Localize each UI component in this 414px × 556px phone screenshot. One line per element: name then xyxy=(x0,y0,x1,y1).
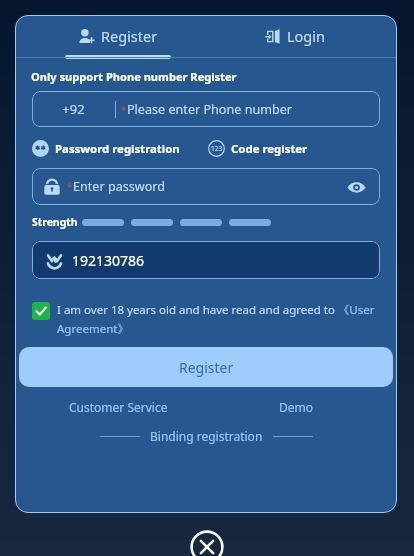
button[interactable]: * xyxy=(32,168,380,205)
staticText: Please enter Phone number xyxy=(127,101,293,118)
button[interactable]: Register xyxy=(29,15,206,58)
staticText: Only support Phone number Register xyxy=(31,69,237,84)
staticText: +92 xyxy=(32,100,115,118)
button[interactable]: Show password xyxy=(344,175,368,199)
button[interactable]: 192130786 xyxy=(32,241,380,279)
button[interactable]: +92 xyxy=(32,91,380,127)
button[interactable]: Login xyxy=(206,15,383,58)
button[interactable]: Agree checkbox xyxy=(32,302,50,320)
staticText: Register xyxy=(101,26,158,46)
button[interactable]: Register xyxy=(19,347,393,387)
button[interactable]: Customer Service xyxy=(69,399,168,415)
staticText: * xyxy=(121,103,127,117)
staticText: I am over 18 years old and have read and… xyxy=(57,302,382,337)
button[interactable]: Demo xyxy=(279,399,314,415)
staticText: * xyxy=(67,180,73,194)
button[interactable]: Password registration xyxy=(32,140,180,157)
button[interactable]: Binding registration xyxy=(150,428,263,444)
staticText: Login xyxy=(287,26,325,46)
staticText: Password registration xyxy=(55,141,180,157)
staticText: Enter password xyxy=(73,178,165,195)
staticText: Register xyxy=(179,358,234,377)
staticText: 123 xyxy=(211,144,223,153)
staticText: 192130786 xyxy=(72,251,145,270)
button[interactable]: Close xyxy=(190,530,224,556)
staticText: Code register xyxy=(231,141,308,157)
staticText: Strength xyxy=(32,215,78,229)
button[interactable]: 123 xyxy=(208,140,308,157)
